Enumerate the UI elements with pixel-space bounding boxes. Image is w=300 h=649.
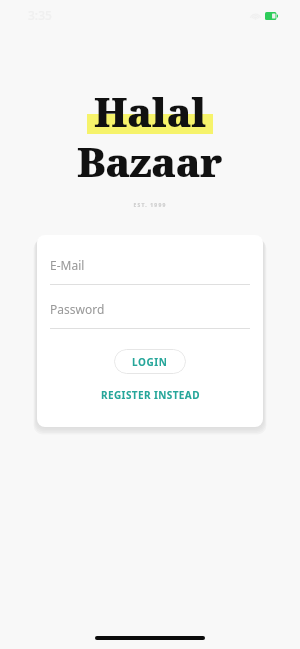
button[interactable]: LOGIN <box>114 349 186 374</box>
staticText: EST. 1999 <box>133 202 167 209</box>
staticText: LOGIN <box>132 355 168 369</box>
staticText: REGISTER INSTEAD <box>101 388 200 402</box>
staticText: Password <box>50 301 105 317</box>
button[interactable]: REGISTER INSTEAD <box>95 385 206 405</box>
button[interactable]: E-Mail <box>50 257 250 285</box>
staticText: E-Mail <box>50 257 85 273</box>
button[interactable]: Password <box>50 301 250 329</box>
staticText: Bazaar <box>77 134 223 188</box>
staticText: Halal <box>94 84 206 138</box>
